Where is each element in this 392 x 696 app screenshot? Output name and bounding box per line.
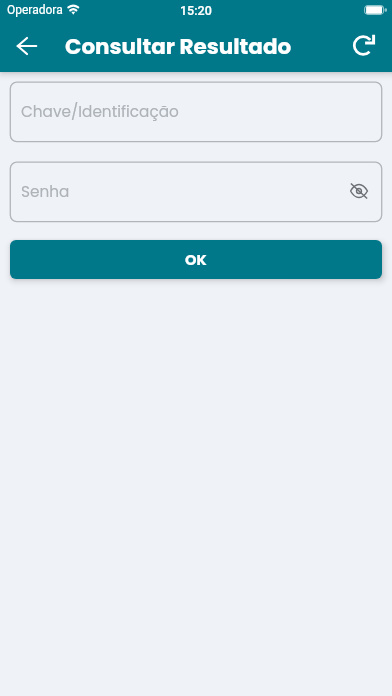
button[interactable]: Voltar bbox=[5, 24, 49, 68]
button[interactable]: Mostrar senha bbox=[346, 178, 372, 204]
button[interactable]: Chave/Identificação bbox=[0, 81, 392, 143]
staticText: 15:20 bbox=[180, 3, 212, 18]
staticText: Consultar Resultado bbox=[65, 31, 292, 61]
button[interactable]: OK bbox=[10, 240, 382, 279]
button[interactable]: Senha bbox=[0, 161, 392, 223]
button[interactable]: Atualizar bbox=[343, 24, 387, 68]
staticText: Senha bbox=[21, 181, 70, 202]
staticText: OK bbox=[185, 250, 207, 270]
staticText: Operadora bbox=[7, 3, 63, 17]
staticText: Chave/Identificação bbox=[21, 101, 179, 122]
